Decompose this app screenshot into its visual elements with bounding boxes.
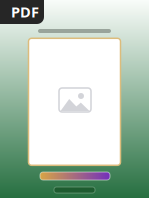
- button[interactable]: PDF: [0, 0, 44, 24]
- staticText: PDF: [11, 2, 39, 21]
